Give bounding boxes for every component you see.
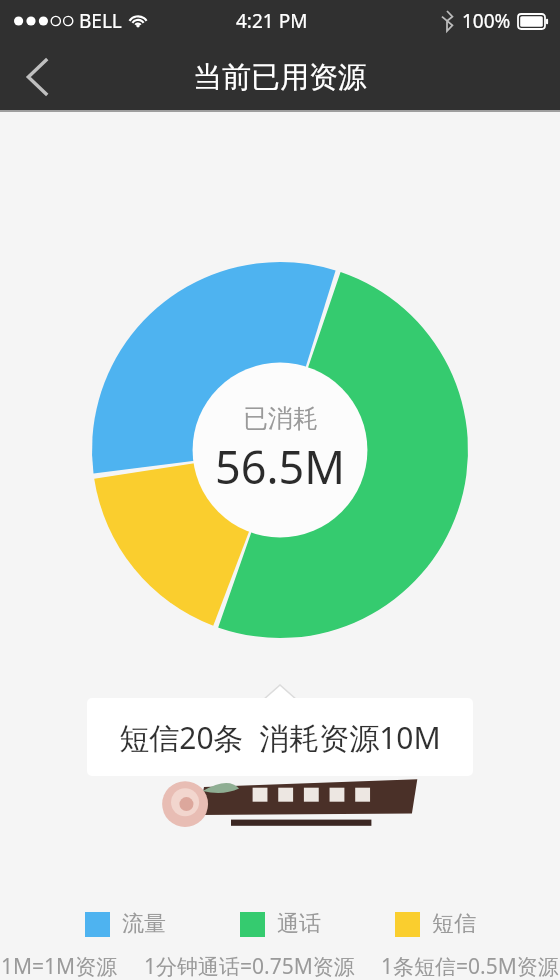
staticText: 1M=1M资源: [1, 952, 118, 980]
staticText: 56.5M: [215, 436, 346, 497]
staticText: 已消耗: [243, 403, 318, 434]
staticText: BELL: [79, 8, 122, 34]
staticText: 1分钟通话=0.75M资源: [144, 952, 355, 980]
button[interactable]: 流量: [85, 910, 166, 938]
staticText: 通话: [277, 910, 321, 938]
staticText: 4:21 PM: [236, 8, 308, 34]
staticText: 短信: [432, 910, 476, 938]
staticText: 短信20条 消耗资源10M: [119, 717, 441, 758]
button[interactable]: 短信: [395, 910, 476, 938]
button[interactable]: 通话: [240, 910, 321, 938]
button[interactable]: Back: [0, 42, 76, 112]
staticText: 当前已用资源: [193, 59, 367, 96]
button[interactable]: 短信20条 消耗资源10M: [87, 698, 473, 776]
staticText: 100%: [462, 8, 511, 34]
staticText: 1条短信=0.5M资源: [381, 952, 559, 980]
staticText: 流量: [122, 910, 166, 938]
